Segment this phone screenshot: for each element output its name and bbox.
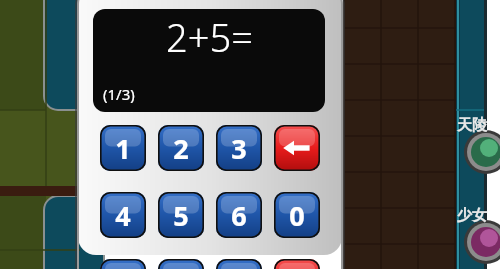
staticText: 天陵 xyxy=(457,116,487,135)
staticText: 2 xyxy=(173,130,189,167)
button[interactable]: 1 xyxy=(100,125,146,171)
staticText: (1/3) xyxy=(103,84,135,104)
button[interactable]: 3 xyxy=(216,125,262,171)
staticText: 1 xyxy=(115,130,131,167)
staticText: 6 xyxy=(231,197,247,234)
staticText: 4 xyxy=(115,197,131,234)
button[interactable]: 4 xyxy=(100,192,146,238)
button[interactable]: Backspace xyxy=(274,125,320,171)
button[interactable]: 6 xyxy=(216,192,262,238)
button[interactable]: 8 xyxy=(158,259,204,269)
staticText: 5 xyxy=(173,197,189,234)
staticText: 3 xyxy=(231,130,247,167)
button[interactable]: 7 xyxy=(100,259,146,269)
button[interactable]: 9 xyxy=(216,259,262,269)
staticText: 少女 xyxy=(457,206,487,225)
button[interactable]: 2+5= xyxy=(93,9,325,112)
button[interactable]: Clear xyxy=(274,259,320,269)
staticText: 2+5= xyxy=(166,11,253,63)
button[interactable]: 2 xyxy=(158,125,204,171)
button[interactable]: 5 xyxy=(158,192,204,238)
button[interactable]: 0 xyxy=(274,192,320,238)
staticText: 0 xyxy=(289,197,305,234)
